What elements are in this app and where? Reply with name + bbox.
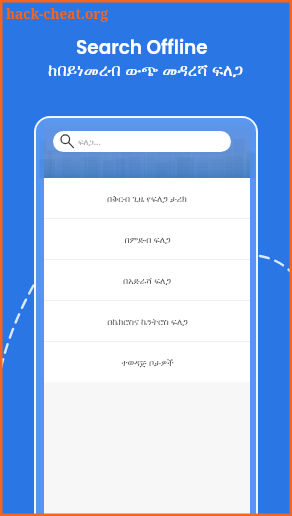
staticText: በምድብ ፍለጋ — [124, 233, 171, 245]
staticText: በአድራሻ ፍለጋ — [123, 274, 171, 286]
staticText: ፍለጋ... — [78, 136, 101, 148]
staticText: በኬክሮስና ኬንትሮስ ፍለጋ — [107, 315, 188, 327]
staticText: ተወዳጅ ቦታዎች — [121, 356, 174, 368]
other: Search — [60, 134, 74, 149]
button[interactable]: Search — [53, 131, 231, 152]
staticText: በቅርብ ጊዜ የፍለጋ ታሪክ — [107, 192, 187, 204]
button[interactable]: በአድራሻ ፍለጋ — [44, 260, 250, 300]
button[interactable]: በቅርብ ጊዜ የፍለጋ ታሪክ — [44, 178, 250, 218]
staticText: ከበይነመረብ ውጭ መዳረሻ ፍለጋ — [48, 58, 244, 81]
button[interactable]: በኬክሮስና ኬንትሮስ ፍለጋ — [44, 301, 250, 341]
staticText: Search Offline — [76, 35, 208, 61]
staticText: hack-cheat.org — [6, 4, 108, 23]
button[interactable]: ተወዳጅ ቦታዎች — [44, 342, 250, 382]
button[interactable]: በምድብ ፍለጋ — [44, 219, 250, 259]
